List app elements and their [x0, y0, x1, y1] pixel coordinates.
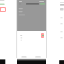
button[interactable] — [0, 7, 6, 12]
button[interactable]: Open item — [41, 33, 44, 38]
